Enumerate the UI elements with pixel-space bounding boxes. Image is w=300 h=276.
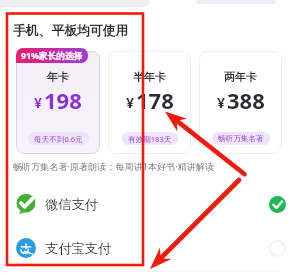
staticText: 畅听万集名著·原著朗读；每周讲1本好书·精讲解读 [13, 160, 215, 172]
other: Not selected [269, 240, 286, 257]
staticText: ¥ [217, 93, 226, 112]
staticText: 微信支付 [45, 196, 98, 213]
button[interactable]: 两年卡 [199, 51, 282, 154]
staticText: 178 [136, 85, 174, 115]
staticText: 畅听万集名著 [218, 134, 264, 144]
staticText: 两年卡 [224, 70, 257, 84]
staticText: 手机、平板均可使用 [13, 23, 129, 39]
staticText: ¥ [126, 93, 135, 112]
button[interactable]: 支付宝支付 [0, 234, 300, 262]
staticText: 每天不到0.6元 [34, 134, 83, 144]
staticText: 198 [44, 85, 82, 115]
button[interactable]: 年卡 [16, 51, 100, 154]
staticText: ¥ [34, 93, 43, 112]
staticText: 半年卡 [133, 70, 166, 84]
staticText: 91%家长的选择 [21, 50, 83, 62]
other: Selected [269, 196, 286, 213]
staticText: 支付宝支付 [45, 240, 111, 257]
staticText: 388 [227, 85, 265, 115]
staticText: 有效期183天 [128, 134, 172, 144]
staticText: 年卡 [47, 70, 69, 84]
button[interactable]: 半年卡 [108, 51, 191, 154]
button[interactable]: 微信支付 [0, 190, 300, 218]
